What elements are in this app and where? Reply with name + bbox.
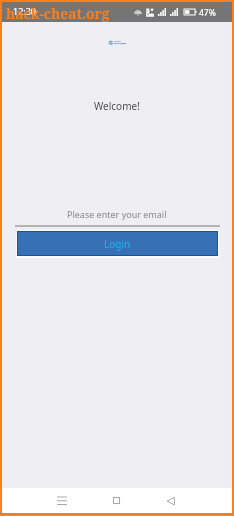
staticText: hack-cheat.org	[6, 4, 110, 23]
button[interactable]: Home	[102, 488, 130, 513]
button[interactable]: Login	[18, 232, 217, 255]
button[interactable]: Recent apps	[48, 488, 76, 513]
staticText: Please enter your email	[67, 208, 167, 220]
staticText: 47%	[199, 7, 216, 19]
staticText: 12:30	[13, 5, 37, 17]
staticText: Login	[104, 237, 131, 251]
button[interactable]: Back	[157, 488, 185, 513]
staticText: Welcome!	[94, 99, 140, 113]
